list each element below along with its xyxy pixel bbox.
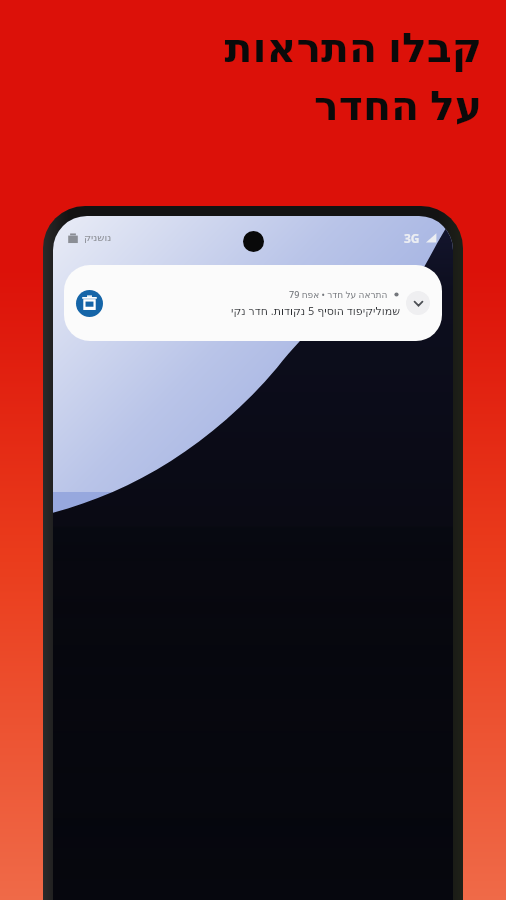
button[interactable]: 79 התראה על חדר • אפח [64, 265, 442, 341]
staticText: קבלו התראות [224, 18, 482, 74]
staticText: על החדר [314, 76, 482, 132]
button[interactable]: Expand notification [406, 291, 430, 315]
staticText: 79 התראה על חדר • אפח [289, 288, 388, 300]
staticText: נושניק [84, 232, 112, 244]
staticText: 3G [404, 230, 420, 246]
staticText: שמוליקיפוד הוסיף 5 נקודות. חדר נקי [231, 303, 400, 318]
